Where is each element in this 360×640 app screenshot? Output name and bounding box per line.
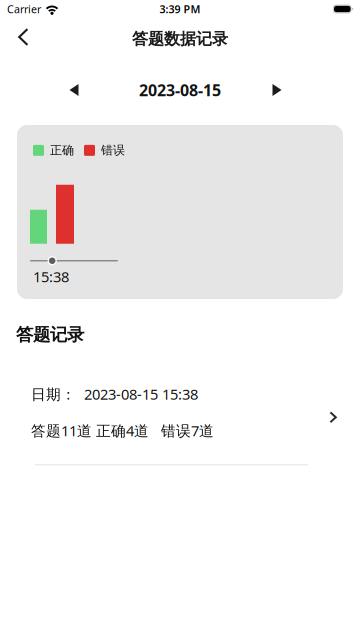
staticText: 15:38 [33,267,69,286]
staticText: 答题记录 [16,324,84,345]
staticText: 正确 [50,143,74,158]
button[interactable]: 日期： 2023-08-15 15:38 [0,373,360,465]
staticText: 3:39 PM [159,2,200,16]
staticText: 2023-08-15 [139,79,221,101]
button[interactable]: Previous day [60,78,88,102]
staticText: 日期： 2023-08-15 15:38 [31,384,198,404]
button[interactable]: Next day [263,78,291,102]
staticText: 错误 [101,143,125,158]
staticText: 答题数据记录 [132,29,228,49]
button[interactable]: Back [6,26,40,52]
staticText: Carrier [7,2,41,16]
staticText: 答题11道 正确4道 错误7道 [31,421,214,440]
